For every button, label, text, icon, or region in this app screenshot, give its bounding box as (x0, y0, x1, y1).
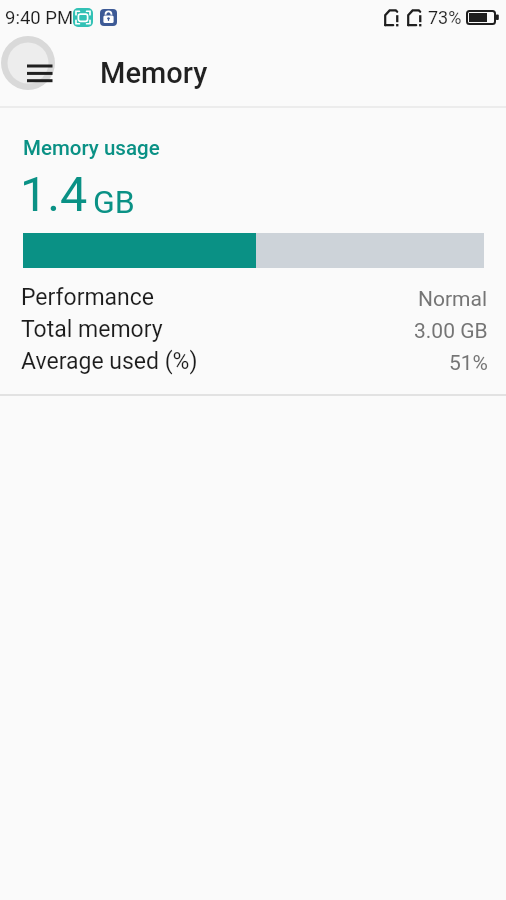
staticText: Memory usage (23, 136, 160, 160)
staticText: Normal (418, 287, 488, 312)
staticText: 51% (449, 351, 488, 376)
staticText: Average used (%) (21, 348, 198, 375)
button[interactable]: Performance (0, 282, 506, 314)
staticText: Memory (100, 56, 208, 90)
staticText: Performance (21, 284, 155, 311)
staticText: GB (93, 183, 135, 221)
button[interactable]: Total memory (0, 314, 506, 346)
button[interactable]: Average used (%) (0, 346, 506, 378)
staticText: 1.4 (20, 166, 88, 223)
staticText: 73% (428, 7, 462, 28)
staticText: 9:40 PM (5, 7, 74, 29)
button[interactable] (0, 21, 70, 105)
staticText: Total memory (21, 316, 163, 343)
staticText: 3.00 GB (414, 319, 488, 344)
